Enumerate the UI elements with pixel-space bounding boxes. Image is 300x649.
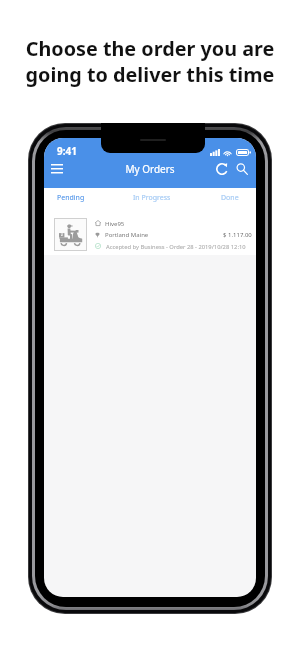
button[interactable]: Search — [229, 156, 255, 182]
staticText: Choose the order you are going to delive… — [0, 35, 300, 88]
staticText: Accepted by Business - Order 28 - 2019/1… — [106, 243, 246, 251]
staticText: $ 1.117.00 — [223, 231, 252, 239]
staticText: Done — [221, 193, 239, 203]
button[interactable]: Hive95 — [44, 208, 256, 255]
button[interactable]: Refresh — [209, 156, 235, 182]
button[interactable]: Menu — [44, 156, 70, 182]
staticText: In Progress — [133, 193, 171, 203]
button[interactable]: In Progress — [126, 188, 178, 208]
staticText: Portland Maine — [105, 231, 149, 239]
staticText: Pending — [57, 193, 85, 203]
staticText: Hive95 — [105, 220, 125, 228]
button[interactable]: Pending — [45, 188, 97, 208]
staticText: 9:41 — [57, 144, 77, 158]
button[interactable]: Done — [204, 188, 256, 208]
staticText: My Orders — [44, 162, 256, 176]
